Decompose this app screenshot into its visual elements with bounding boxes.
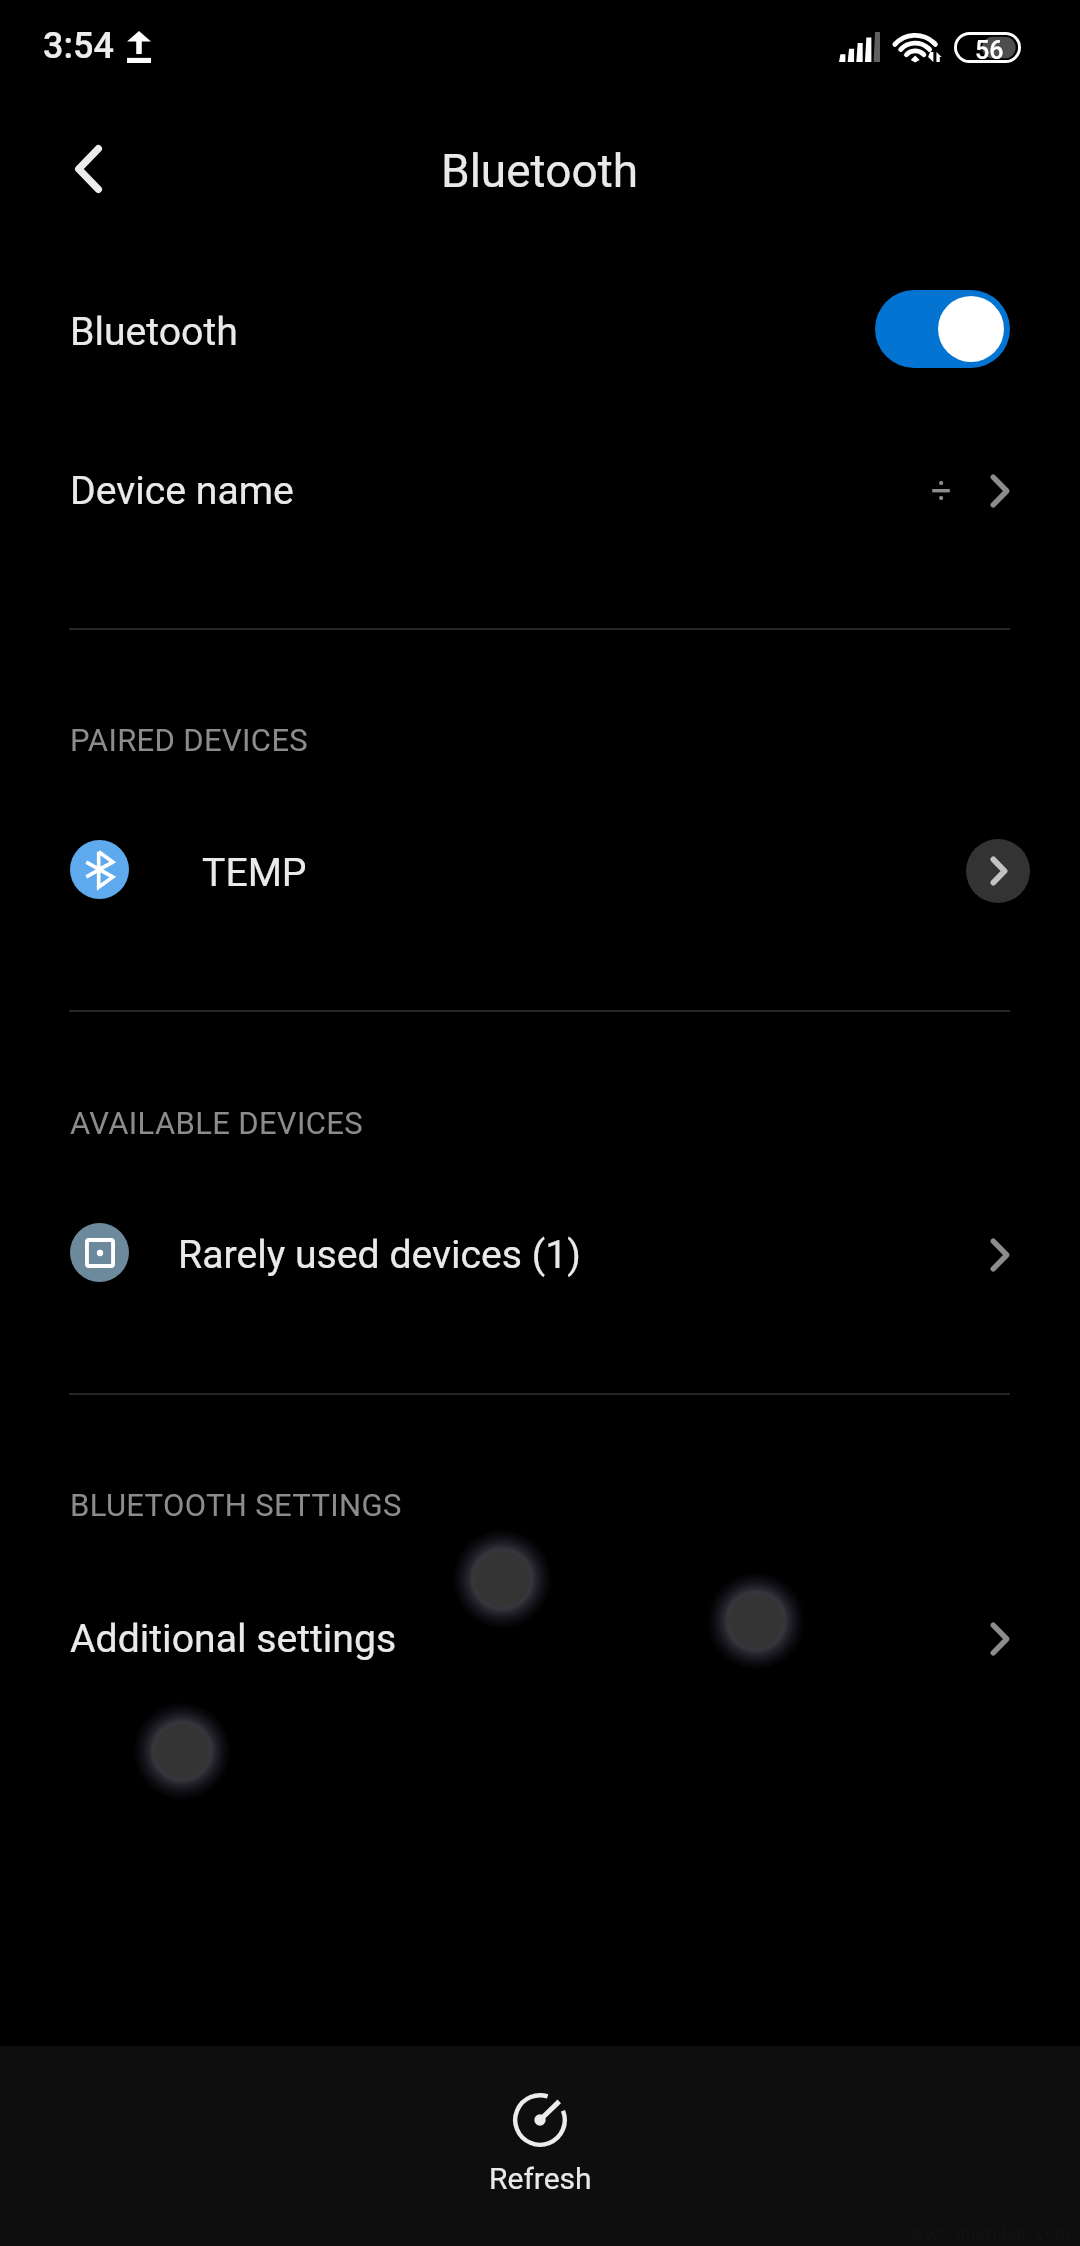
button[interactable]: Rarely used devices (1) [0,1197,1080,1313]
button[interactable]: TEMP [0,815,1080,931]
staticText: Device name [70,468,294,514]
button[interactable]: Bluetooth switch [875,290,1010,368]
staticText: Refresh [489,2161,592,2196]
staticText: Additional settings [70,1616,397,1662]
button[interactable]: Bluetooth [0,252,1080,412]
staticText: 56 [975,36,1004,65]
staticText: TEMP [202,850,307,896]
button[interactable]: Refresh [0,2046,1080,2196]
button[interactable]: Device settings [966,839,1030,903]
button[interactable]: Device name [0,411,1080,571]
staticText: Bluetooth [441,144,639,198]
staticText: BLUETOOTH SETTINGS [70,1487,402,1523]
staticText: 3:54 [43,25,114,67]
staticText: ÷ [931,470,952,512]
button[interactable]: Back [42,123,134,215]
staticText: PAIRED DEVICES [70,722,309,758]
staticText: Bluetooth [70,309,238,355]
staticText: Rarely used devices (1) [178,1232,581,1278]
button[interactable]: Additional settings [0,1581,1080,1697]
staticText: AVAILABLE DEVICES [70,1105,363,1141]
